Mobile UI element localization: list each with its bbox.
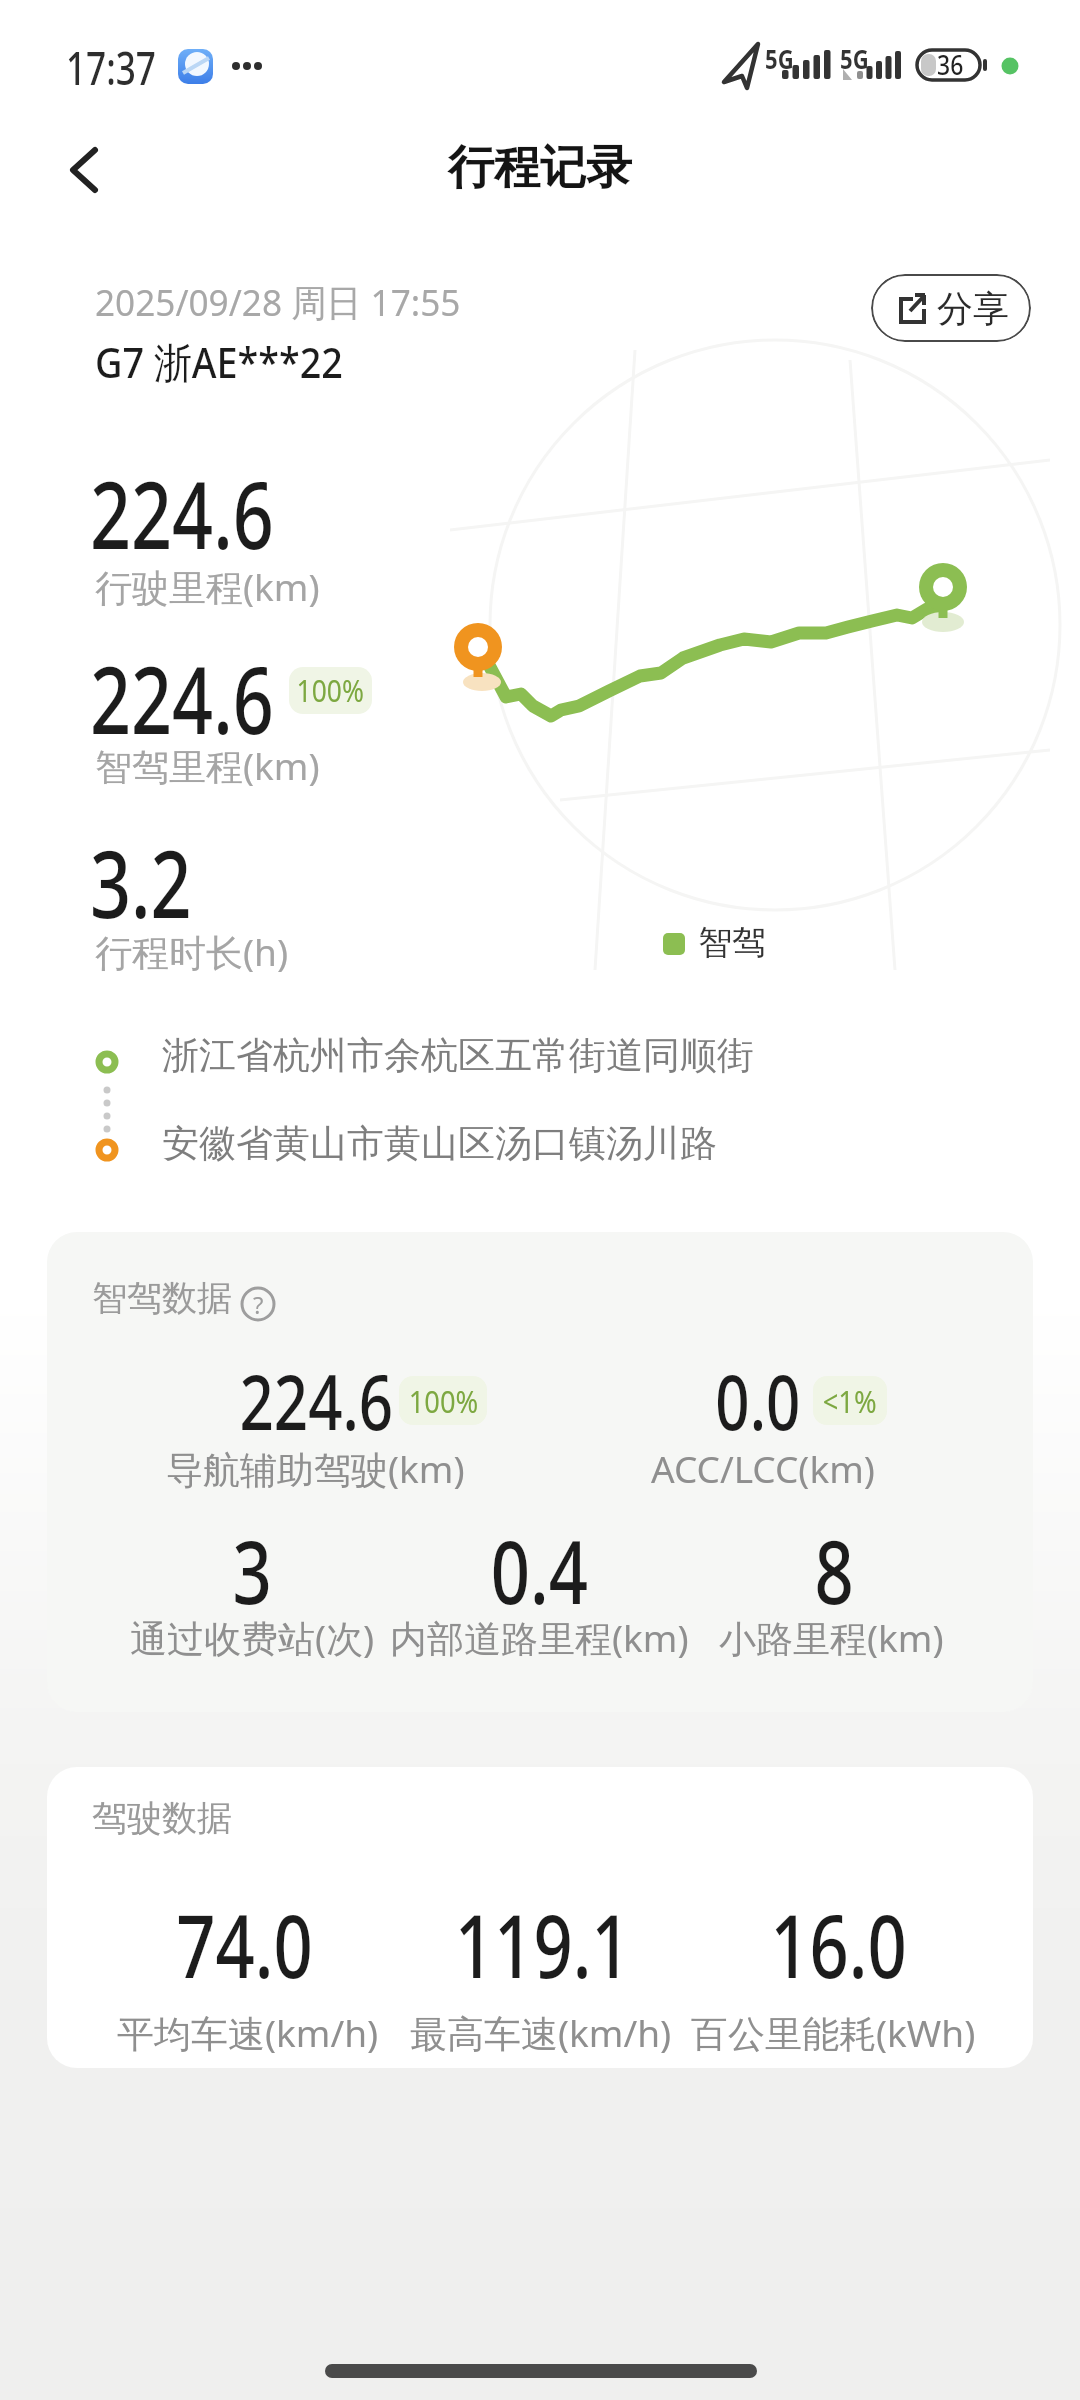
button[interactable]: 分享 xyxy=(871,274,1031,342)
staticText: 分享 xyxy=(937,286,1009,331)
staticText: 驾驶数据 xyxy=(92,1796,232,1840)
staticText: 224.6 xyxy=(90,636,274,761)
staticText: 智驾里程(km) xyxy=(95,740,320,791)
staticText: 17:37 xyxy=(66,37,156,98)
staticText: ? xyxy=(253,1288,264,1321)
staticText: 2025/09/28 周日 17:55 xyxy=(95,276,461,327)
staticText: 智驾 xyxy=(698,921,766,964)
staticText: G7 浙AE***22 xyxy=(95,333,343,390)
staticText: 浙江省杭州市余杭区五常街道同顺街 xyxy=(162,1032,754,1079)
button[interactable]: ? xyxy=(235,1281,281,1327)
staticText: 100% xyxy=(409,1380,478,1422)
staticText: 安徽省黄山市黄山区汤口镇汤川路 xyxy=(162,1120,717,1167)
staticText: 36 xyxy=(937,46,963,83)
staticText: 3.2 xyxy=(90,820,192,945)
staticText: 行程记录 xyxy=(448,139,632,197)
staticText: 通过收费站(次) xyxy=(130,1612,375,1663)
staticText: 74.0 xyxy=(176,1884,313,2004)
staticText: 0.4 xyxy=(491,1510,588,1630)
staticText: 5G xyxy=(840,41,869,76)
staticText: 224.6 xyxy=(90,451,274,576)
staticText: 119.1 xyxy=(455,1884,631,2004)
staticText: 100% xyxy=(297,670,364,711)
staticText: 导航辅助驾驶(km) xyxy=(166,1443,465,1494)
staticText: 行驶里程(km) xyxy=(95,561,320,612)
staticText: 百公里能耗(kWh) xyxy=(691,2007,976,2058)
staticText: ACC/LCC(km) xyxy=(651,1443,875,1493)
staticText: 3 xyxy=(233,1510,272,1630)
staticText: 智驾数据 xyxy=(92,1276,232,1320)
staticText: 224.6 xyxy=(239,1349,393,1453)
staticText: 小路里程(km) xyxy=(719,1612,944,1663)
staticText: 5G xyxy=(765,41,794,76)
staticText: 最高车速(km/h) xyxy=(410,2007,672,2058)
staticText: 行程时长(h) xyxy=(95,926,289,977)
staticText: 16.0 xyxy=(770,1884,907,2004)
staticText: 内部道路里程(km) xyxy=(390,1612,689,1663)
button[interactable] xyxy=(46,130,126,210)
staticText: <1% xyxy=(823,1380,877,1422)
staticText: 8 xyxy=(815,1510,854,1630)
staticText: 0.0 xyxy=(715,1349,801,1453)
staticText: 平均车速(km/h) xyxy=(117,2007,379,2058)
